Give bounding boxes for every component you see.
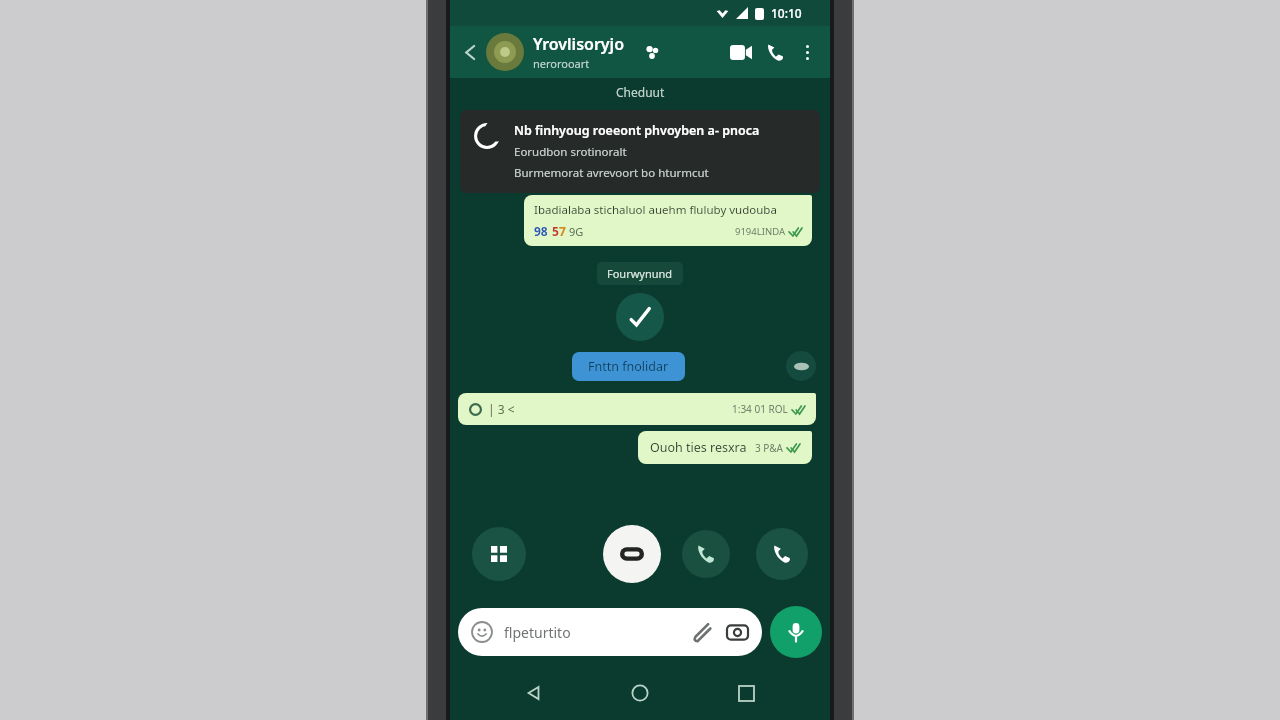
staticText: nerorooart	[533, 56, 590, 71]
button[interactable]: Voice message	[770, 606, 822, 658]
staticText: 98	[534, 223, 548, 239]
button[interactable]: Nb finhyoug roeeont phvoyben a- pnoca	[460, 110, 820, 193]
staticText: 9G	[569, 224, 584, 239]
button[interactable]: Home	[618, 674, 662, 712]
staticText: Ouoh ties resxra	[650, 439, 747, 456]
button[interactable]: Add call	[682, 530, 730, 578]
staticText: 3 P&A	[755, 441, 783, 455]
button[interactable]: Video call	[724, 35, 758, 69]
staticText: Yrovlisoryjo	[533, 33, 625, 55]
staticText: 9194LINDA	[735, 225, 785, 238]
staticText: | 3 <	[488, 401, 515, 417]
button[interactable]: flpeturtito	[458, 608, 762, 656]
button[interactable]: End call	[603, 525, 661, 583]
button[interactable]: Back	[458, 39, 484, 65]
staticText: 1:34 01 ROL	[732, 402, 788, 416]
staticText: Fnttn fnolidar	[588, 358, 669, 375]
button[interactable]: Ouoh ties resxra	[638, 431, 812, 464]
staticText: 5	[552, 223, 559, 239]
staticText: Burmemorat avrevoort bo hturmcut	[514, 165, 709, 181]
button[interactable]: Back	[512, 674, 556, 712]
button[interactable]: Recents	[724, 674, 768, 712]
staticText: Fourwynund	[607, 266, 673, 281]
staticText: 10:10	[771, 5, 802, 21]
staticText: flpeturtito	[504, 623, 571, 642]
button[interactable]: Keypad	[472, 527, 526, 581]
staticText: Cheduut	[616, 84, 665, 100]
staticText: Ibadialaba stichaluol auehm fluluby vudo…	[534, 202, 777, 218]
button[interactable]: Attachment	[786, 351, 816, 381]
staticText: 7	[559, 223, 566, 239]
staticText: Eorudbon srotinoralt	[514, 144, 627, 160]
button[interactable]: | 3 <	[458, 393, 816, 425]
staticText: Nb finhyoug roeeont phvoyben a- pnoca	[514, 122, 760, 139]
button[interactable]: Fourwynund	[597, 262, 683, 285]
button[interactable]: Fnttn fnolidar	[572, 352, 685, 381]
button[interactable]: Call	[756, 528, 808, 580]
button[interactable]: Group	[638, 38, 666, 66]
button[interactable]: Voice call	[758, 35, 792, 69]
button[interactable]: Delivered	[616, 293, 664, 341]
button[interactable]: Ibadialaba stichaluol auehm fluluby vudo…	[524, 195, 812, 246]
button[interactable]: Profile photo	[486, 33, 524, 71]
button[interactable]: More options	[792, 37, 822, 67]
